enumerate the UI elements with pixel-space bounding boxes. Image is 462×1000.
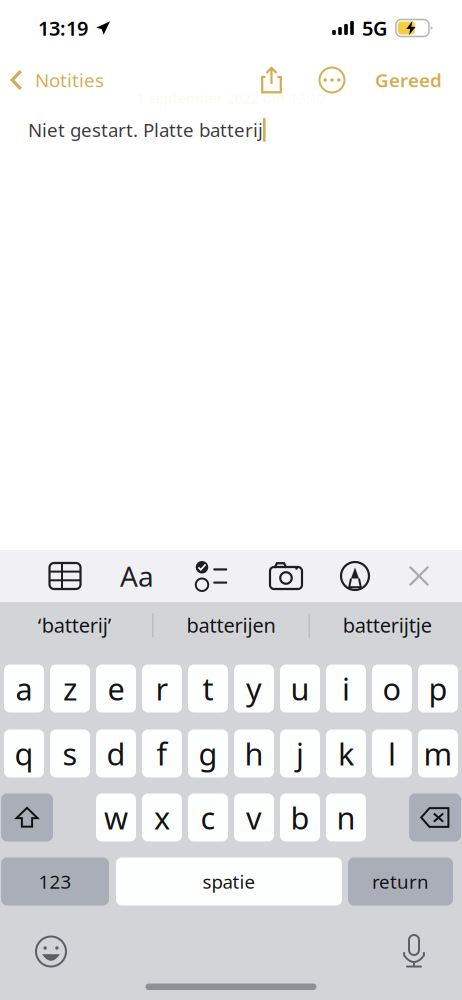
button[interactable]: Camera (249, 556, 323, 596)
button[interactable]: u (280, 664, 320, 712)
button[interactable]: Deel (241, 59, 302, 100)
button[interactable]: q (4, 729, 44, 777)
staticText: 13:19 (38, 15, 88, 41)
button[interactable]: b (280, 793, 320, 841)
staticText: ‘batterij’ (38, 612, 112, 638)
button[interactable]: Dicteren (391, 920, 462, 975)
button[interactable]: Backspace (409, 793, 461, 841)
staticText: y (246, 668, 262, 709)
staticText: b (290, 797, 309, 838)
staticText: f (156, 733, 167, 774)
staticText: k (338, 733, 354, 774)
button[interactable]: y (234, 664, 274, 712)
staticText: l (388, 733, 396, 774)
button[interactable]: f (142, 729, 182, 777)
button[interactable]: c (188, 793, 228, 841)
button[interactable]: p (418, 664, 458, 712)
staticText: Aa (120, 557, 154, 595)
staticText: Gereed (375, 68, 442, 92)
staticText: n (336, 797, 355, 838)
staticText: e (107, 668, 124, 709)
button[interactable]: Gereed (362, 60, 462, 100)
button[interactable]: n (326, 793, 366, 841)
button[interactable]: t (188, 664, 228, 712)
button[interactable]: 123 (1, 857, 109, 905)
button[interactable]: r (142, 664, 182, 712)
staticText: j (296, 733, 304, 774)
button[interactable]: z (50, 664, 90, 712)
button[interactable]: Aa (100, 556, 174, 596)
button[interactable]: batterijen (153, 601, 309, 648)
staticText: z (63, 668, 77, 709)
button[interactable]: Emoji (0, 920, 79, 975)
staticText: d (106, 733, 125, 774)
staticText: x (154, 797, 170, 838)
staticText: u (290, 668, 309, 709)
button[interactable]: g (188, 729, 228, 777)
button[interactable]: batterijtje (310, 601, 462, 648)
button[interactable]: a (4, 664, 44, 712)
button[interactable]: ‘batterij’ (0, 601, 152, 648)
staticText: s (62, 733, 77, 774)
staticText: v (246, 797, 262, 838)
button[interactable]: i (326, 664, 366, 712)
button[interactable]: m (418, 729, 458, 777)
button[interactable]: d (96, 729, 136, 777)
staticText: m (423, 733, 452, 774)
button[interactable]: s (50, 729, 90, 777)
staticText: batterijtje (343, 612, 432, 638)
staticText: q (14, 733, 33, 774)
button[interactable]: w (96, 793, 136, 841)
button[interactable]: Tabel (30, 556, 100, 596)
button[interactable]: Sluiten (387, 556, 451, 596)
staticText: i (342, 668, 350, 709)
staticText: 123 (38, 869, 71, 894)
button[interactable]: Meer (302, 60, 362, 100)
staticText: Niet gestart. Platte batterij (28, 117, 263, 142)
staticText: 1 september 2022 om 13:19 (136, 88, 325, 107)
button[interactable]: h (234, 729, 274, 777)
staticText: batterijen (186, 612, 275, 638)
button[interactable]: spatie (116, 857, 342, 905)
button[interactable]: Shift (1, 793, 53, 841)
staticText: Notities (35, 68, 104, 92)
staticText: w (104, 797, 128, 838)
staticText: 5G (362, 15, 388, 41)
button[interactable]: return (348, 857, 453, 905)
staticText: c (200, 797, 215, 838)
staticText: g (198, 733, 217, 774)
button[interactable]: Checklist (174, 556, 249, 596)
button[interactable]: v (234, 793, 274, 841)
button[interactable]: x (142, 793, 182, 841)
staticText: r (155, 668, 168, 709)
button[interactable]: Notities (0, 60, 104, 100)
button[interactable]: j (280, 729, 320, 777)
button[interactable]: o (372, 664, 412, 712)
staticText: h (244, 733, 263, 774)
button[interactable]: e (96, 664, 136, 712)
staticText: return (372, 869, 429, 894)
button[interactable]: l (372, 729, 412, 777)
staticText: spatie (202, 869, 255, 894)
staticText: p (428, 668, 447, 709)
button[interactable]: Opmaak (323, 556, 387, 596)
staticText: a (15, 668, 32, 709)
staticText: o (382, 668, 401, 709)
staticText: t (202, 668, 213, 709)
button[interactable]: k (326, 729, 366, 777)
